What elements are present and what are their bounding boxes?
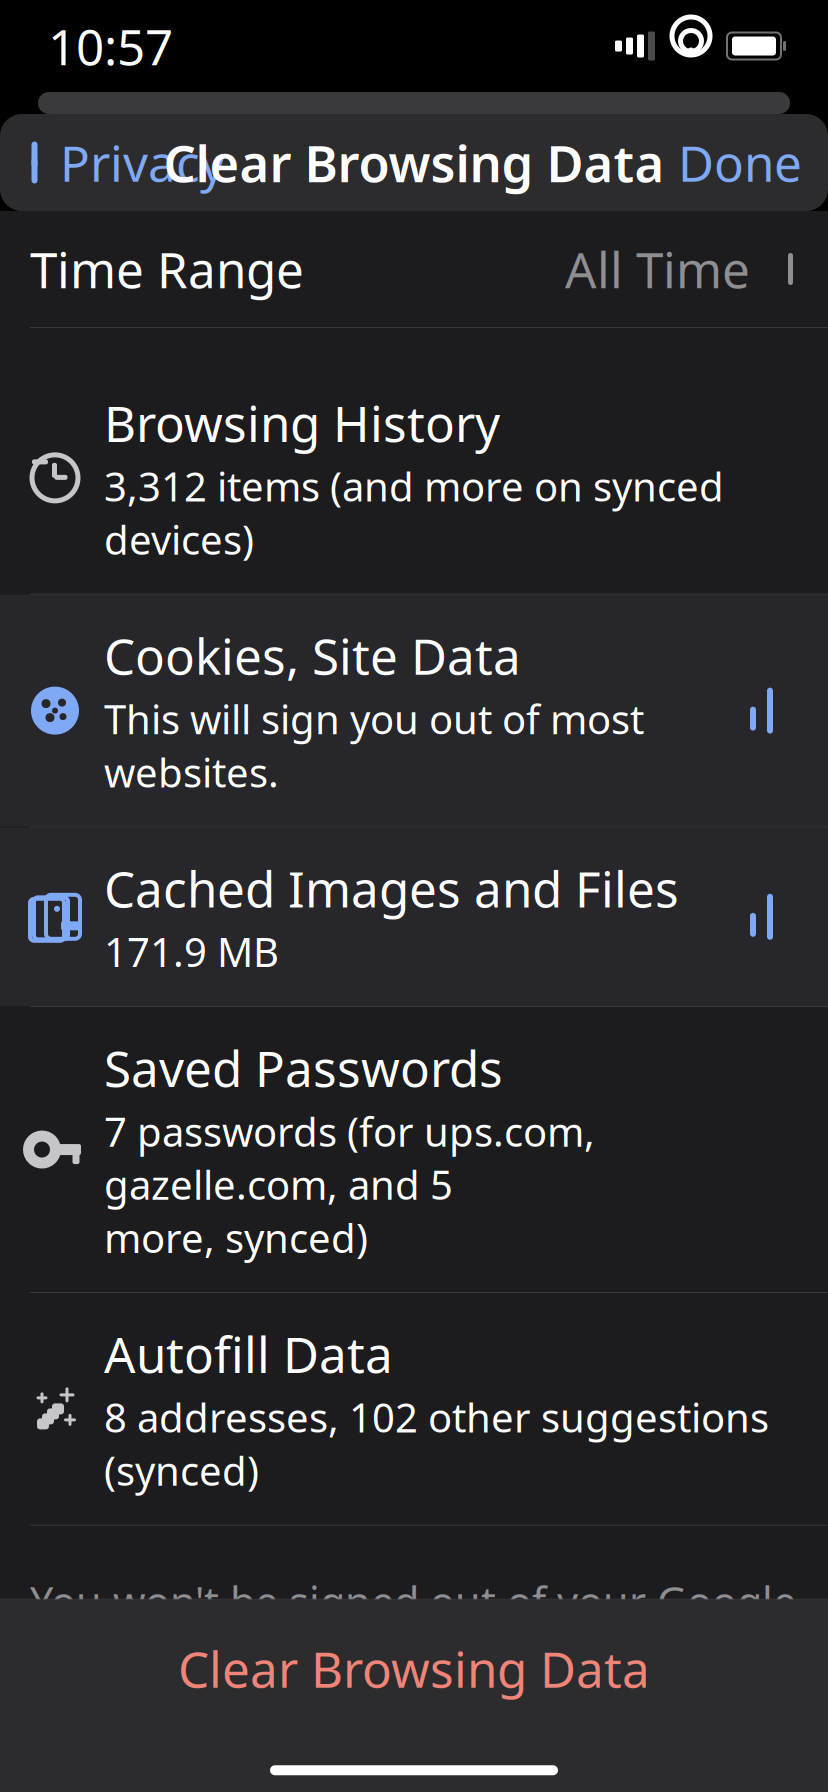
staticText: You won't be signed out of your Google A… <box>30 1574 796 1683</box>
button[interactable]: Cached Images and Files <box>0 827 828 1006</box>
staticText: Browsing History <box>104 390 500 455</box>
staticText: Time Range <box>30 236 304 302</box>
staticText: Autofill Data <box>104 1321 393 1386</box>
staticText: 10:57 <box>48 13 173 79</box>
button[interactable]: Done <box>652 116 828 209</box>
button[interactable]: Time Range <box>0 211 828 327</box>
staticText: 7 passwords (for ups.com, gazelle.com, a… <box>104 1105 595 1264</box>
staticText: Cached Images and Files <box>104 855 679 921</box>
staticText: 171.9 MB <box>104 925 279 978</box>
staticText: Done <box>678 130 802 195</box>
staticText: Clear Browsing Data <box>178 1636 650 1701</box>
staticText: This will sign you out of most websites. <box>104 692 644 798</box>
button[interactable]: Cookies, Site Data <box>0 595 828 826</box>
staticText: 8 addresses, 102 other suggestions (sync… <box>104 1390 769 1497</box>
button[interactable]: Privacy <box>0 116 237 209</box>
staticText: Cookies, Site Data <box>104 623 521 688</box>
staticText: Saved Passwords <box>104 1035 503 1101</box>
button[interactable]: Saved Passwords <box>0 1007 828 1292</box>
staticText: 3,312 items (and more on synced devices) <box>104 459 724 566</box>
staticText: Clear Browsing Data <box>163 129 664 196</box>
staticText: All Time <box>565 236 750 302</box>
staticText: Privacy <box>60 130 225 195</box>
button[interactable]: Browsing History <box>0 362 828 594</box>
staticText: Account may have other forms of browsing… <box>30 1691 679 1792</box>
button[interactable]: Clear Browsing Data <box>0 1600 828 1737</box>
button[interactable]: Autofill Data <box>0 1293 828 1525</box>
